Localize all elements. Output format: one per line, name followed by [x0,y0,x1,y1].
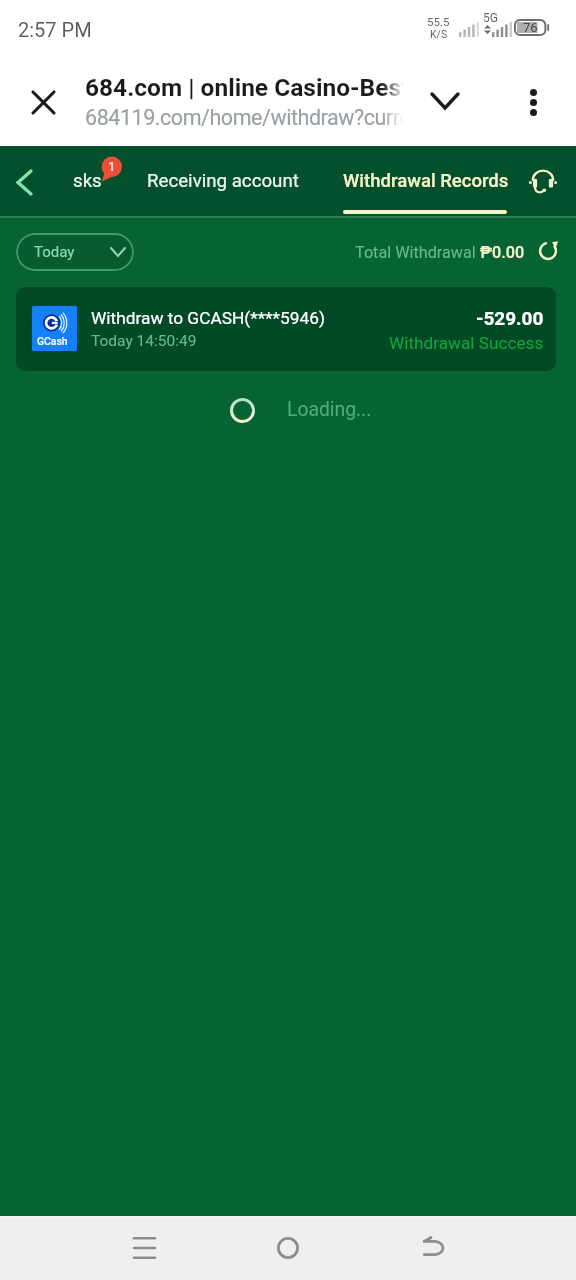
button[interactable]: Home [264,1216,312,1280]
button[interactable]: GCash [16,287,556,371]
staticText: Today 14:50:49 [91,332,197,350]
button[interactable]: Back [409,1216,457,1280]
staticText: GCash [37,335,68,347]
button[interactable]: Close [19,78,67,126]
button[interactable]: Customer support [521,159,565,203]
button[interactable]: Receiving account [147,156,299,206]
staticText: 1 [108,159,116,174]
staticText: 76 [523,20,538,35]
button[interactable]: Back [0,158,48,206]
staticText: Today [34,243,75,261]
staticText: 5G [483,11,498,25]
staticText: Receiving account [147,170,299,192]
staticText: sks [73,170,102,192]
button[interactable]: sks [73,156,102,206]
staticText: Total Withdrawal [355,243,480,262]
staticText: Loading... [287,398,372,421]
button[interactable]: Withdrawal Records [343,156,509,206]
button[interactable]: Expand tabs [421,77,469,125]
staticText: Withdraw to GCASH(****5946) [91,308,325,328]
staticText: Withdrawal Success [389,333,544,353]
staticText: 2:57 PM [18,18,92,41]
button[interactable]: More options [509,78,557,126]
staticText: Withdrawal Records [343,170,509,192]
staticText: 684.com | online Casino-Best Casino [85,73,404,102]
button[interactable]: Today [16,233,134,271]
staticText: ₱0.00 [480,243,525,262]
button[interactable]: Recent apps [120,1216,168,1280]
staticText: 55.5 [427,15,450,28]
staticText: 684119.com/home/withdraw?currency=PHP [85,105,404,130]
staticText: -529.00 [476,307,544,329]
staticText: K/S [430,28,448,40]
button[interactable]: Refresh [534,237,562,265]
